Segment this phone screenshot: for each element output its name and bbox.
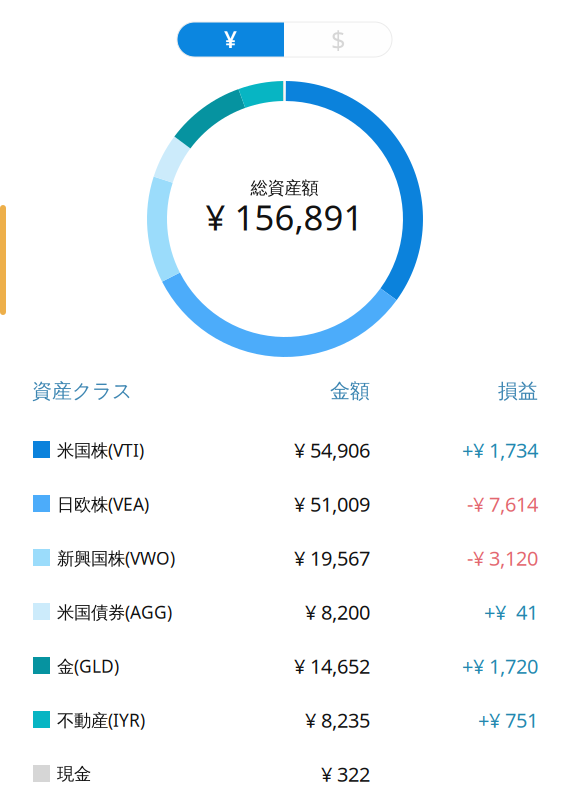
staticText: 不動産(IYR) [57, 708, 145, 731]
staticText: +¥ 41 [484, 599, 538, 625]
button[interactable]: 新興国株(VWO) [0, 531, 569, 585]
button[interactable]: Open side menu [0, 205, 6, 315]
button[interactable]: ¥ [177, 22, 284, 57]
staticText: 金(GLD) [57, 654, 119, 677]
staticText: 資産クラス [32, 379, 132, 403]
staticText: +¥ 1,734 [462, 437, 538, 463]
button[interactable]: 不動産(IYR) [0, 693, 569, 747]
staticText: ¥ 156,891 [205, 194, 363, 240]
staticText: 米国株(VTI) [57, 438, 144, 461]
staticText: 金額 [330, 379, 370, 403]
staticText: 現金 [57, 763, 91, 785]
button[interactable]: 日欧株(VEA) [0, 477, 569, 531]
staticText: ¥ 8,235 [305, 707, 370, 733]
staticText: ¥ 54,906 [294, 437, 370, 463]
staticText: 新興国株(VWO) [57, 546, 175, 569]
staticText: 総資産額 [250, 177, 318, 199]
staticText: +¥ 751 [478, 707, 538, 733]
staticText: ¥ [224, 24, 237, 54]
staticText: $ [331, 23, 345, 56]
staticText: 日欧株(VEA) [57, 492, 149, 515]
staticText: ¥ 14,652 [294, 653, 370, 679]
button[interactable]: 米国株(VTI) [0, 423, 569, 477]
staticText: +¥ 1,720 [462, 653, 538, 679]
button[interactable]: 米国債券(AGG) [0, 585, 569, 639]
staticText: -¥ 7,614 [467, 491, 538, 517]
staticText: ¥ 8,200 [305, 599, 370, 625]
button[interactable]: 現金 [0, 747, 569, 800]
staticText: 米国債券(AGG) [57, 600, 172, 623]
button[interactable]: $ [284, 22, 392, 57]
staticText: 損益 [498, 379, 538, 403]
staticText: ¥ 322 [321, 761, 370, 787]
staticText: ¥ 19,567 [294, 545, 370, 571]
button[interactable]: 金(GLD) [0, 639, 569, 693]
staticText: -¥ 3,120 [467, 545, 538, 571]
staticText: ¥ 51,009 [294, 491, 370, 517]
